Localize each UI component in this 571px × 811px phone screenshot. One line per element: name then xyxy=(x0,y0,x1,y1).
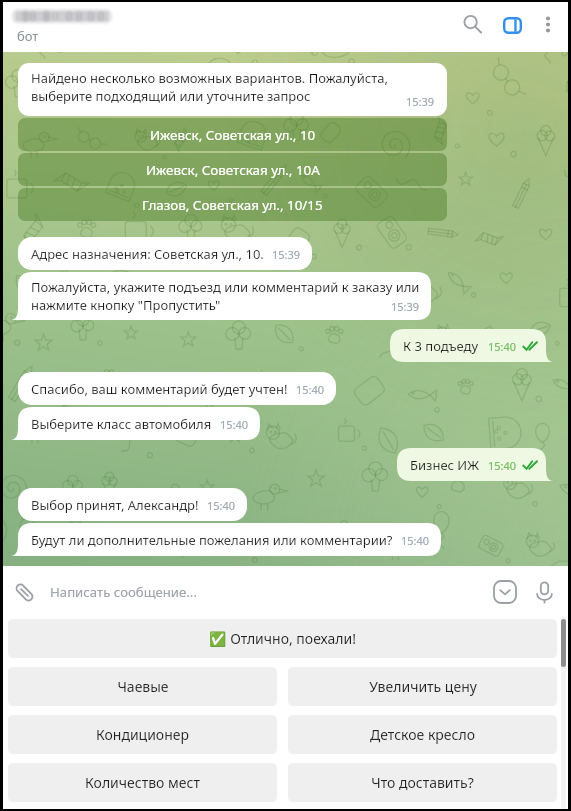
button[interactable]: Что доставить? xyxy=(288,763,557,802)
button[interactable]: Детское кресло xyxy=(288,715,557,754)
staticText: Бизнес ИЖ xyxy=(410,456,479,474)
button[interactable]: Пожалуйста, укажите подъезд или коммента… xyxy=(11,272,431,320)
staticText: Будут ли дополнительные пожелания или ко… xyxy=(31,531,393,549)
button[interactable]: Attach file xyxy=(6,574,42,610)
button[interactable]: Hide keyboard xyxy=(487,574,523,610)
button[interactable]: Количество мест xyxy=(8,763,277,802)
staticText: бот xyxy=(17,27,39,45)
button[interactable]: Выбор принят, Александр! xyxy=(18,488,247,521)
button[interactable]: Record voice message xyxy=(526,574,562,610)
staticText: Найдено несколько возможных вариантов. П… xyxy=(31,69,388,87)
staticText: 15:39 xyxy=(272,247,301,262)
staticText: 15:39 xyxy=(406,94,435,109)
button[interactable]: Бизнес ИЖ xyxy=(397,448,553,481)
button[interactable]: ✅ Отлично, поехали! xyxy=(8,619,557,658)
staticText: Кондиционер xyxy=(96,725,189,744)
staticText: 15:40 xyxy=(488,339,517,354)
staticText: 15:40 xyxy=(220,417,249,432)
button[interactable]: Выберите класс автомобиля xyxy=(11,407,260,440)
staticText: Спасибо, ваш комментарий будет учтен! xyxy=(31,380,288,398)
button[interactable]: Search xyxy=(450,2,494,46)
button[interactable]: Увеличить цену xyxy=(288,667,557,706)
button[interactable]: Open side panel xyxy=(490,3,534,47)
staticText: Ижевск, Советская ул., 10А xyxy=(146,161,320,179)
staticText: Детское кресло xyxy=(370,725,475,744)
staticText: Выберите класс автомобиля xyxy=(31,415,212,433)
button[interactable]: Чаевые xyxy=(8,667,277,706)
button[interactable]: Спасибо, ваш комментарий будет учтен! xyxy=(18,372,336,405)
button[interactable]: Глазов, Советская ул., 10/15 xyxy=(18,188,447,221)
staticText: Ижевск, Советская ул., 10 xyxy=(150,126,316,144)
staticText: Адрес назначения: Советская ул., 10. xyxy=(31,245,264,263)
staticText: 15:40 xyxy=(296,382,325,397)
staticText: 15:40 xyxy=(488,458,517,473)
staticText: выберите подходящий или уточните запрос xyxy=(31,87,311,105)
staticText: нажмите кнопку "Пропустить" xyxy=(31,296,221,314)
staticText: Написать сообщение... xyxy=(50,583,197,601)
button[interactable]: More options xyxy=(526,3,570,47)
staticText: Количество мест xyxy=(85,773,200,792)
button[interactable]: Будут ли дополнительные пожелания или ко… xyxy=(11,523,441,556)
button[interactable]: К 3 подъеду xyxy=(390,329,553,362)
staticText: Пожалуйста, укажите подъезд или коммента… xyxy=(31,278,420,296)
staticText: 15:39 xyxy=(391,299,420,314)
staticText: Чаевые xyxy=(117,677,169,696)
button[interactable]: Адрес назначения: Советская ул., 10. xyxy=(18,237,312,270)
staticText: Увеличить цену xyxy=(369,677,477,696)
staticText: К 3 подъеду xyxy=(403,337,479,355)
staticText: 15:40 xyxy=(207,498,236,513)
button[interactable]: Кондиционер xyxy=(8,715,277,754)
staticText: Что доставить? xyxy=(371,773,474,792)
button[interactable]: Ижевск, Советская ул., 10А xyxy=(18,153,447,186)
button[interactable]: Найдено несколько возможных вариантов. П… xyxy=(18,63,447,116)
button[interactable]: Ижевск, Советская ул., 10 xyxy=(18,118,447,151)
staticText: 15:40 xyxy=(401,533,430,548)
staticText: ✅ Отлично, поехали! xyxy=(209,629,356,648)
staticText: Выбор принят, Александр! xyxy=(31,496,199,514)
staticText: Глазов, Советская ул., 10/15 xyxy=(142,196,323,214)
